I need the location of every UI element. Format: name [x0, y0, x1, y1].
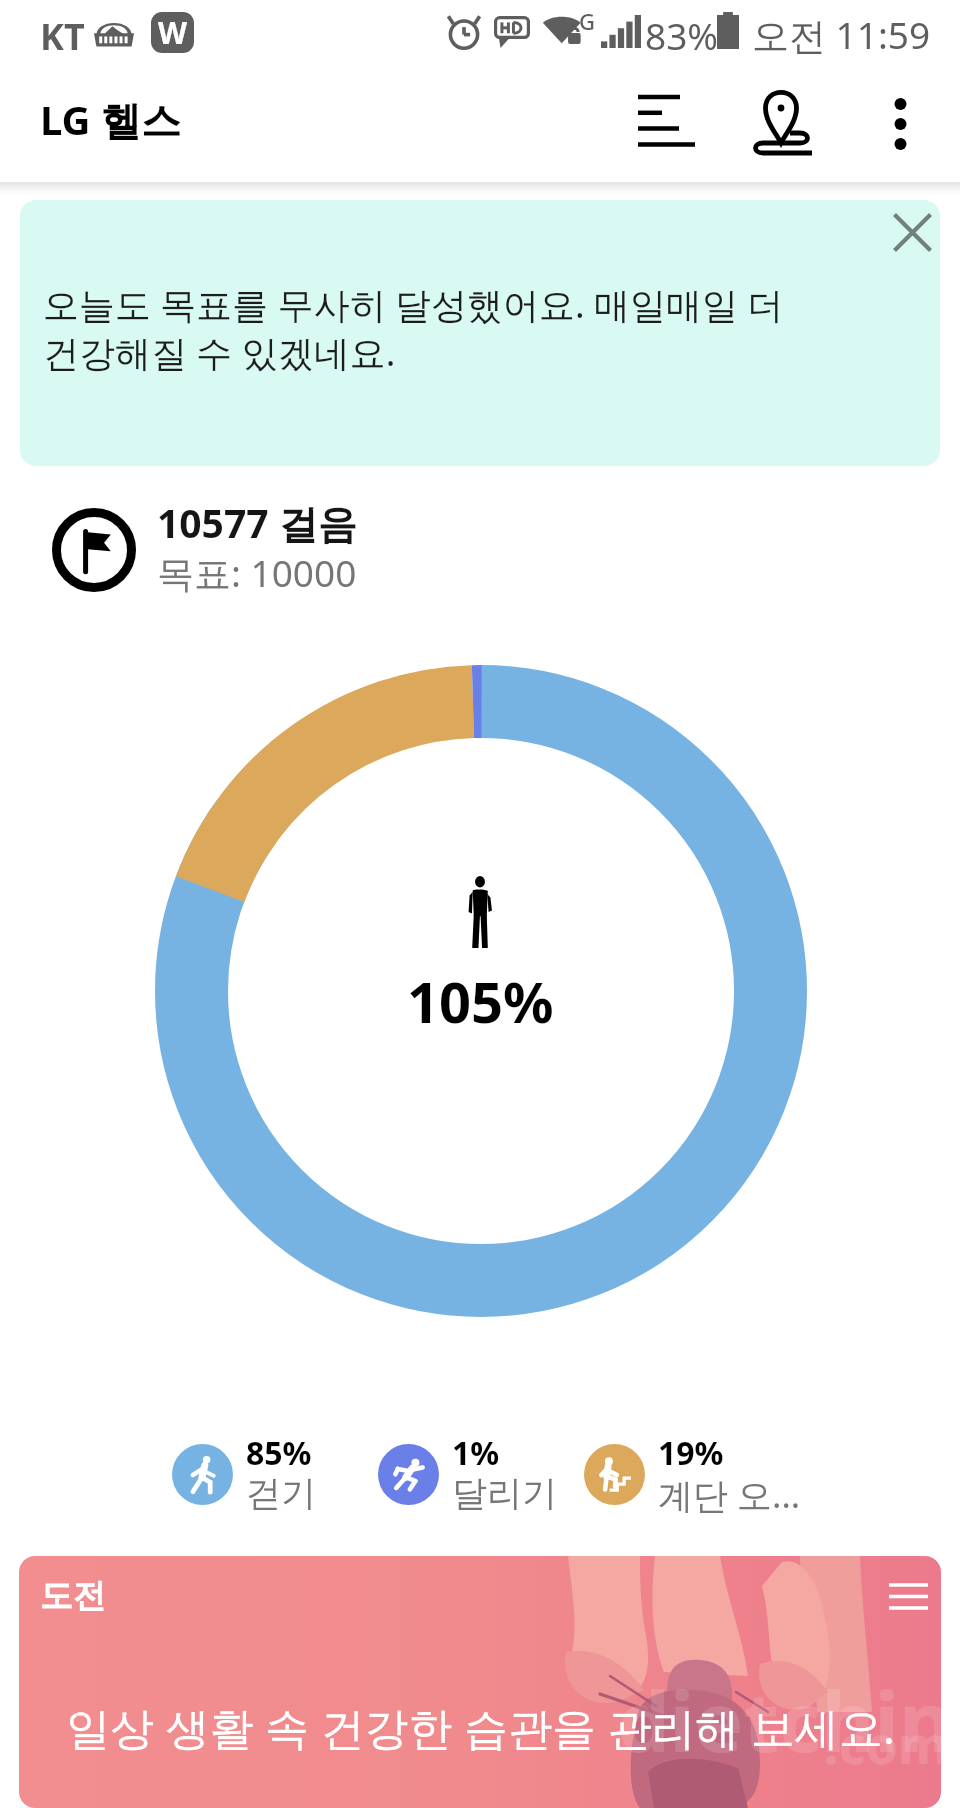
staticText: 오늘도 목표를 무사히 달성했어요. 매일매일 더 건강해질 수 있겠네요. — [43, 280, 799, 377]
button[interactable]: More options — [856, 78, 944, 182]
staticText: 10577 걸음 — [157, 496, 357, 549]
button[interactable]: 19% — [584, 1431, 801, 1523]
staticText: .com — [824, 1708, 941, 1779]
button[interactable]: 1% — [378, 1431, 557, 1519]
staticText: LG 헬스 — [40, 92, 181, 147]
staticText: 달리기 — [452, 1471, 557, 1515]
staticText: 오전 11:59 — [752, 9, 931, 60]
staticText: 85% — [246, 1431, 312, 1475]
staticText: 105% — [407, 963, 554, 1039]
staticText: W — [158, 12, 188, 53]
button[interactable]: Sort list — [610, 78, 720, 182]
staticText: 걷기 — [246, 1471, 316, 1515]
staticText: KT — [40, 12, 85, 61]
staticText: 도전 — [40, 1575, 106, 1617]
staticText: 일상 생활 속 건강한 습관을 관리해 보세요. — [66, 1697, 895, 1757]
staticText: dietchin — [618, 1664, 941, 1776]
staticText: 목표: 10000 — [157, 547, 357, 598]
staticText: 19% — [658, 1431, 724, 1475]
button[interactable]: Route — [740, 78, 830, 182]
button[interactable]: Steps summary — [0, 480, 960, 1530]
button[interactable]: 85% — [172, 1431, 316, 1519]
button[interactable]: Close — [856, 200, 940, 284]
staticText: 1% — [452, 1431, 500, 1475]
button[interactable]: Menu — [849, 1556, 941, 1632]
staticText: 83% — [645, 10, 719, 60]
button[interactable]: Close — [20, 200, 940, 466]
staticText: G — [579, 6, 595, 36]
staticText: 계단 오... — [658, 1471, 801, 1519]
button[interactable]: dietchin — [19, 1556, 941, 1808]
